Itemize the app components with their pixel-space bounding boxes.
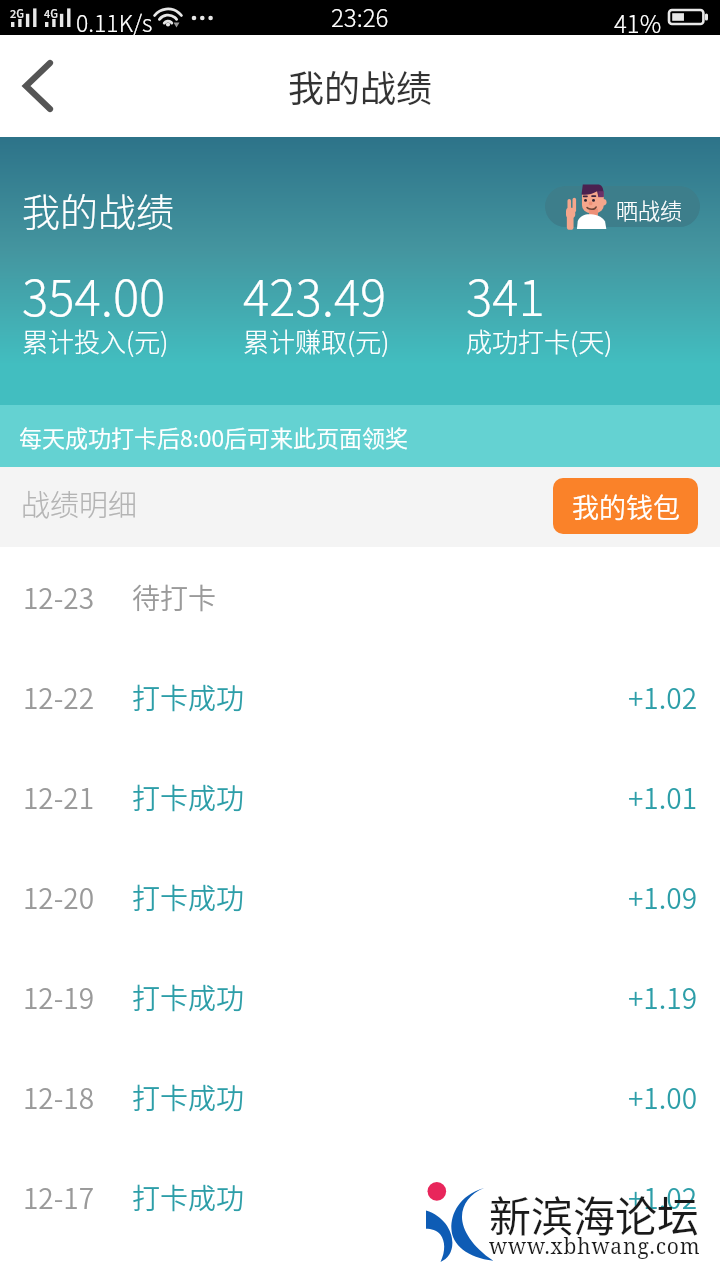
staticText: 12-23 [23,577,98,618]
staticText: 我的战绩 [288,60,433,112]
staticText: 打卡成功 [132,977,245,1018]
staticText: +1.02 [628,677,698,718]
staticText: 41% [614,5,662,40]
staticText: +1.01 [628,777,698,818]
staticText: 晒战绩 [616,193,683,225]
staticText: +1.02 [628,1177,698,1218]
staticText: 我的钱包 [572,487,680,526]
staticText: 打卡成功 [132,1177,245,1218]
staticText: 4G [44,5,58,21]
staticText: 新滨海论坛 [489,1183,700,1244]
staticText: 354.00 [22,259,252,330]
staticText: 12-18 [23,1077,98,1118]
staticText: +1.09 [628,877,698,918]
staticText: 累计投入(元) [22,322,252,360]
button[interactable]: 12-18 [0,1047,720,1147]
staticText: 12-22 [23,677,98,718]
staticText: 12-21 [23,777,98,818]
button[interactable]: 12-21 [0,747,720,847]
staticText: 23:26 [331,0,389,34]
staticText: 战绩明细 [21,482,138,524]
staticText: 每天成功打卡后8:00后可来此页面领奖 [19,420,409,453]
button[interactable]: 12-20 [0,847,720,947]
staticText: 12-17 [23,1177,98,1218]
staticText: 打卡成功 [132,677,245,718]
staticText: 打卡成功 [132,777,245,818]
staticText: 423.49 [243,259,473,330]
staticText: www.xbhwang.com [489,1232,701,1261]
staticText: +1.19 [628,977,698,1018]
staticText: 12-19 [23,977,98,1018]
staticText: 打卡成功 [132,877,245,918]
staticText: 0.11K/s [76,5,153,38]
staticText: 2G [10,5,24,21]
button[interactable]: 晒战绩 [545,186,700,232]
staticText: 我的战绩 [22,182,175,237]
button[interactable]: 我的钱包 [553,478,698,534]
button[interactable]: 12-23 [0,547,720,647]
button[interactable]: Back [0,41,74,131]
staticText: 累计赚取(元) [243,322,473,360]
staticText: +1.00 [628,1077,698,1118]
button[interactable]: 12-17 [0,1147,720,1247]
staticText: 成功打卡(天) [466,322,696,360]
staticText: 341 [466,259,696,330]
staticText: 打卡成功 [132,1077,245,1118]
staticText: 待打卡 [132,577,217,618]
staticText: 12-20 [23,877,98,918]
button[interactable]: 12-22 [0,647,720,747]
button[interactable]: 12-19 [0,947,720,1047]
